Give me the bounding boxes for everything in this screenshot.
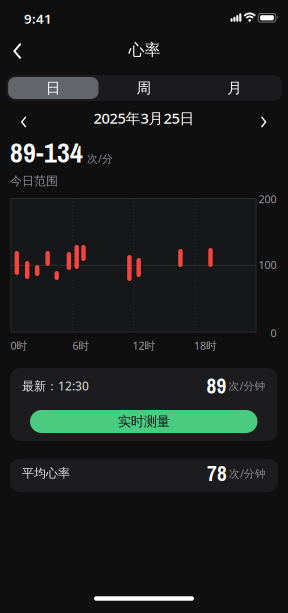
staticText: 月 [227, 79, 242, 97]
staticText: 200 [258, 192, 276, 206]
staticText: 平均心率 [22, 466, 70, 481]
staticText: 12时 [132, 338, 155, 353]
staticText: 9:41 [24, 10, 52, 27]
staticText: 次/分 [87, 151, 113, 165]
staticText: 最新：12:30 [22, 378, 89, 394]
staticText: 6时 [72, 338, 89, 353]
staticText: 今日范围 [10, 174, 58, 188]
staticText: 周 [136, 79, 151, 97]
staticText: 心率 [128, 40, 160, 60]
button[interactable]: Previous day [15, 112, 31, 132]
staticText: 日 [46, 79, 61, 97]
staticText: 2025年3月25日 [93, 108, 194, 128]
button[interactable]: 日 [8, 77, 98, 99]
staticText: 次/分钟 [229, 466, 266, 480]
button[interactable]: Back [7, 39, 27, 63]
button[interactable]: Next day [256, 112, 272, 132]
staticText: 0时 [10, 338, 27, 353]
staticText: 0 [270, 326, 276, 340]
staticText: 100 [258, 258, 276, 272]
button[interactable]: 周 [99, 75, 189, 101]
button[interactable]: 实时测量 [30, 410, 257, 433]
staticText: 18时 [194, 338, 217, 353]
staticText: 89-134 [10, 133, 83, 171]
button[interactable]: 月 [189, 75, 280, 101]
staticText: 实时测量 [118, 413, 170, 430]
staticText: 次/分钟 [228, 379, 265, 393]
staticText: 89 [206, 371, 226, 400]
staticText: 78 [207, 459, 227, 488]
